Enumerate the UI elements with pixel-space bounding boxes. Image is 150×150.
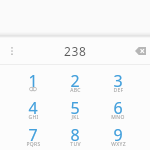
- button[interactable]: 4: [0, 94, 54, 121]
- button[interactable]: Backspace: [130, 36, 150, 65]
- staticText: 9: [113, 124, 123, 146]
- staticText: 2: [70, 70, 80, 92]
- staticText: 3: [113, 70, 123, 92]
- button[interactable]: 5: [54, 94, 96, 121]
- button[interactable]: 6: [96, 94, 150, 121]
- staticText: JKL: [71, 114, 80, 121]
- button[interactable]: 7: [0, 121, 54, 148]
- staticText: 4: [28, 97, 38, 119]
- staticText: DEF: [113, 87, 124, 94]
- button[interactable]: More options: [0, 36, 24, 65]
- button[interactable]: 9: [96, 121, 150, 148]
- staticText: 6: [113, 97, 123, 119]
- staticText: GHI: [28, 114, 39, 121]
- staticText: 5: [70, 97, 80, 119]
- staticText: PQRS: [26, 141, 41, 148]
- staticText: 1: [28, 70, 38, 92]
- button[interactable]: 8: [54, 121, 96, 148]
- staticText: 238: [64, 43, 87, 59]
- staticText: TUV: [70, 141, 81, 148]
- button[interactable]: 3: [96, 67, 150, 94]
- button[interactable]: 2: [54, 67, 96, 94]
- staticText: WXYZ: [111, 141, 126, 148]
- staticText: 8: [70, 124, 80, 146]
- staticText: ABC: [70, 87, 81, 94]
- staticText: MNO: [111, 114, 125, 121]
- button[interactable]: 1: [0, 67, 54, 94]
- staticText: 7: [28, 124, 38, 146]
